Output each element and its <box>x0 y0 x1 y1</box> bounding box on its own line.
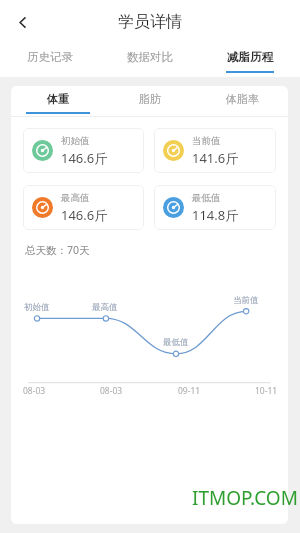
staticText: 数据对比 <box>127 50 173 64</box>
staticText: 114.8斤 <box>192 206 239 224</box>
staticText: 最高值 <box>61 192 90 204</box>
staticText: 141.6斤 <box>192 149 239 167</box>
staticText: ITMOP.COM <box>192 485 298 511</box>
button[interactable]: 历史记录 <box>0 44 100 77</box>
staticText: 减脂历程 <box>227 50 273 64</box>
staticText: 最低值 <box>163 337 189 348</box>
staticText: 学员详情 <box>118 12 182 32</box>
button[interactable]: 初始值 <box>23 128 144 173</box>
staticText: 最高值 <box>92 302 118 313</box>
button[interactable]: Back <box>0 0 44 44</box>
staticText: 历史记录 <box>27 50 73 64</box>
button[interactable]: 当前值 <box>154 128 276 173</box>
staticText: 最低值 <box>192 192 221 204</box>
staticText: 初始值 <box>61 135 90 147</box>
staticText: 146.6斤 <box>61 149 108 167</box>
staticText: 146.6斤 <box>61 206 108 224</box>
staticText: 10-11 <box>255 385 278 397</box>
button[interactable]: 体重 <box>11 86 104 117</box>
staticText: 初始值 <box>24 302 50 313</box>
button[interactable]: 最低值 <box>154 185 276 230</box>
staticText: 当前值 <box>233 295 259 306</box>
staticText: 08-03 <box>100 385 123 397</box>
staticText: 总天数：70天 <box>25 243 90 257</box>
staticText: 脂肪 <box>139 92 161 106</box>
button[interactable]: 体脂率 <box>196 86 288 117</box>
button[interactable]: 数据对比 <box>100 44 200 77</box>
staticText: 当前值 <box>192 135 221 147</box>
button[interactable]: 脂肪 <box>104 86 196 117</box>
button[interactable]: 减脂历程 <box>200 44 300 77</box>
staticText: 08-03 <box>23 385 46 397</box>
staticText: 09-11 <box>178 385 201 397</box>
button[interactable]: 最高值 <box>23 185 144 230</box>
staticText: 体重 <box>47 92 69 106</box>
staticText: 体脂率 <box>226 92 259 106</box>
